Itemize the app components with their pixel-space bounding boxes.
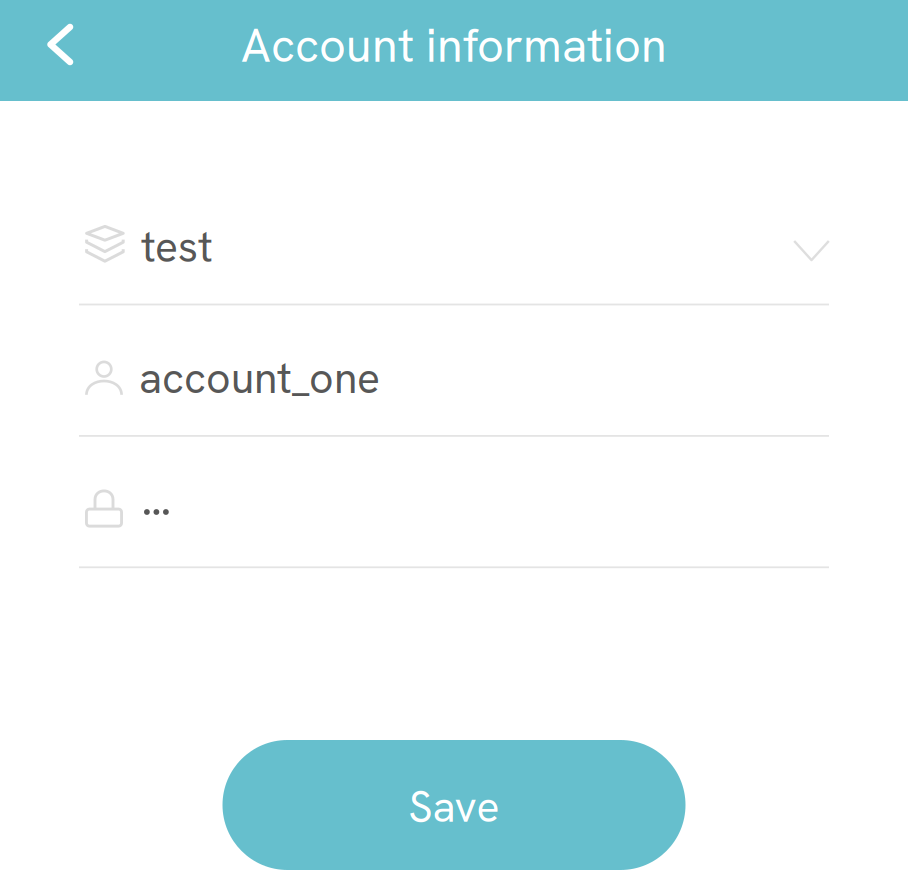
staticText: account_one	[139, 350, 380, 406]
button[interactable]: test	[79, 174, 829, 305]
button[interactable]: Save	[222, 740, 685, 870]
button[interactable]: account_one	[79, 305, 829, 437]
button[interactable]: Back	[0, 0, 96, 101]
button[interactable]: Password	[79, 437, 829, 568]
staticText: Save	[408, 779, 499, 835]
staticText: test	[141, 219, 213, 275]
staticText: Account information	[241, 15, 667, 76]
